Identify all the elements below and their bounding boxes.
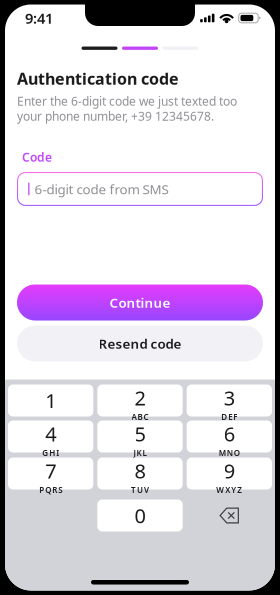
button[interactable]: 7: [8, 457, 93, 489]
button[interactable]: 5: [97, 420, 183, 452]
button[interactable]: Resend code: [17, 325, 263, 361]
staticText: Code: [22, 149, 52, 165]
staticText: 9:41: [25, 8, 53, 28]
button[interactable]: Delete: [187, 499, 272, 531]
button[interactable]: 4: [8, 420, 93, 452]
staticText: 5: [134, 420, 145, 447]
staticText: MNO: [219, 448, 240, 458]
staticText: WXYZ: [216, 485, 242, 495]
staticText: Continue: [109, 294, 170, 311]
staticText: Enter the 6-digit code we just texted to…: [17, 93, 237, 109]
staticText: 8: [134, 457, 145, 484]
button[interactable]: 6: [187, 420, 272, 452]
staticText: ABC: [131, 412, 148, 422]
staticText: PQRS: [39, 485, 62, 495]
staticText: Authentication code: [17, 68, 179, 89]
staticText: JKL: [133, 448, 146, 458]
staticText: 0: [134, 502, 145, 529]
button[interactable]: 0: [97, 499, 183, 531]
button[interactable]: 1: [8, 384, 93, 416]
button[interactable]: 3: [187, 384, 272, 416]
button[interactable]: Continue: [17, 284, 263, 320]
staticText: 1: [45, 387, 56, 414]
button[interactable]: 9: [187, 457, 272, 489]
button[interactable]: 2: [97, 384, 183, 416]
staticText: 4: [45, 420, 56, 447]
staticText: 2: [134, 384, 145, 411]
staticText: TUV: [131, 485, 149, 495]
staticText: 6: [224, 420, 235, 447]
staticText: GHI: [42, 448, 59, 458]
staticText: 9: [224, 457, 235, 484]
staticText: 7: [45, 457, 56, 484]
staticText: your phone number, +39 12345678.: [17, 108, 214, 124]
staticText: 3: [224, 384, 235, 411]
staticText: Resend code: [98, 335, 181, 352]
button[interactable]: 8: [97, 457, 183, 489]
staticText: 6-digit code from SMS: [35, 180, 169, 198]
staticText: DEF: [221, 412, 237, 422]
